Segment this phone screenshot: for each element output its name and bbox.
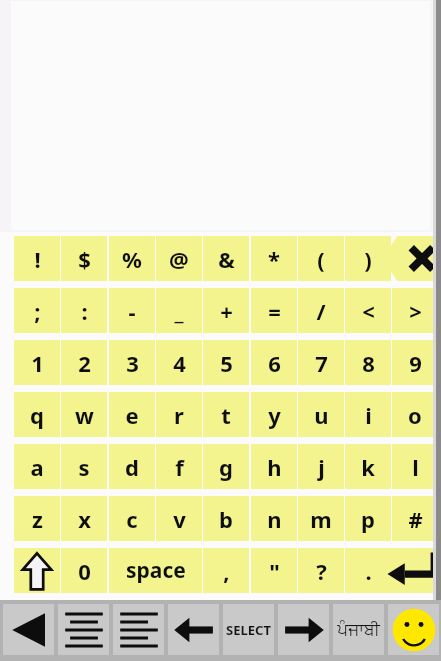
button[interactable]: j <box>298 444 344 489</box>
staticText: 1 <box>31 348 44 378</box>
button[interactable]: 6 <box>251 340 297 385</box>
staticText: 7 <box>315 348 328 378</box>
button[interactable]: l <box>392 444 438 489</box>
staticText: " <box>269 556 280 586</box>
staticText: ? <box>316 556 327 586</box>
button[interactable]: @ <box>156 236 202 281</box>
button[interactable]: 3 <box>109 340 155 385</box>
button[interactable]: p <box>345 496 391 541</box>
button[interactable]: > <box>392 288 438 333</box>
staticText: 2 <box>78 348 91 378</box>
staticText: a <box>30 452 44 482</box>
staticText: e <box>125 400 139 430</box>
button[interactable]: 1 <box>14 340 60 385</box>
staticText: z <box>32 504 43 534</box>
button[interactable]: % <box>109 236 155 281</box>
button[interactable]: g <box>203 444 249 489</box>
staticText: r <box>174 400 184 430</box>
button[interactable]: 7 <box>298 340 344 385</box>
staticText: 4 <box>173 348 186 378</box>
button[interactable]: Shift <box>14 548 60 593</box>
staticText: c <box>126 504 138 534</box>
staticText: ! <box>34 244 41 274</box>
staticText: & <box>218 244 235 274</box>
staticText: % <box>122 244 142 274</box>
button[interactable]: b <box>203 496 249 541</box>
button[interactable]: 0 <box>61 548 107 593</box>
button[interactable]: ? <box>298 548 344 593</box>
button[interactable]: t <box>203 392 249 437</box>
button[interactable]: Align center <box>58 604 109 655</box>
button[interactable]: k <box>345 444 391 489</box>
button[interactable]: Move right <box>278 604 329 655</box>
button[interactable]: i <box>345 392 391 437</box>
button[interactable]: f <box>156 444 202 489</box>
button[interactable]: - <box>109 288 155 333</box>
button[interactable]: d <box>109 444 155 489</box>
staticText: space <box>126 556 186 585</box>
staticText: ; <box>34 296 41 326</box>
button[interactable]: Emoji <box>388 604 439 655</box>
button[interactable]: Previous <box>3 604 54 655</box>
button[interactable]: SELECT <box>223 604 274 655</box>
button[interactable]: , <box>203 548 249 593</box>
button[interactable]: s <box>61 444 107 489</box>
button[interactable]: c <box>109 496 155 541</box>
button[interactable]: * <box>251 236 297 281</box>
button[interactable]: r <box>156 392 202 437</box>
button[interactable]: & <box>203 236 249 281</box>
button[interactable]: 2 <box>61 340 107 385</box>
button[interactable]: e <box>109 392 155 437</box>
staticText: o <box>408 400 422 430</box>
staticText: 6 <box>268 348 281 378</box>
button[interactable]: Align left <box>113 604 164 655</box>
button[interactable]: = <box>251 288 297 333</box>
staticText: k <box>361 452 375 482</box>
staticText: = <box>268 296 281 326</box>
button[interactable]: Move left <box>168 604 219 655</box>
staticText: 8 <box>362 348 375 378</box>
button[interactable]: q <box>14 392 60 437</box>
staticText: x <box>78 504 91 534</box>
button[interactable]: $ <box>61 236 107 281</box>
button[interactable]: / <box>298 288 344 333</box>
staticText: p <box>361 504 375 534</box>
button[interactable]: z <box>14 496 60 541</box>
button[interactable]: # <box>392 496 438 541</box>
button[interactable]: v <box>156 496 202 541</box>
button[interactable]: 5 <box>203 340 249 385</box>
button[interactable]: Backspace <box>383 236 441 281</box>
button[interactable]: + <box>203 288 249 333</box>
button[interactable]: < <box>345 288 391 333</box>
button[interactable]: 9 <box>392 340 438 385</box>
button[interactable]: h <box>251 444 297 489</box>
button[interactable]: u <box>298 392 344 437</box>
button[interactable]: m <box>298 496 344 541</box>
button[interactable]: ਪੰਜਾਬੀ <box>333 604 384 655</box>
button[interactable]: _ <box>156 288 202 333</box>
button[interactable]: ( <box>298 236 344 281</box>
button[interactable]: space <box>109 548 202 593</box>
button[interactable]: n <box>251 496 297 541</box>
button[interactable]: y <box>251 392 297 437</box>
button[interactable]: ) <box>345 236 391 281</box>
button[interactable]: ! <box>14 236 60 281</box>
button[interactable]: : <box>61 288 107 333</box>
staticText: s <box>78 452 90 482</box>
button[interactable]: 8 <box>345 340 391 385</box>
staticText: q <box>30 400 44 430</box>
button[interactable]: Enter <box>383 548 441 593</box>
staticText: SELECT <box>226 621 271 639</box>
button[interactable]: " <box>251 548 297 593</box>
button[interactable]: w <box>61 392 107 437</box>
staticText: 0 <box>78 556 91 586</box>
button[interactable]: . <box>345 548 391 593</box>
button[interactable]: x <box>61 496 107 541</box>
button[interactable]: ; <box>14 288 60 333</box>
button[interactable]: a <box>14 444 60 489</box>
button[interactable]: 4 <box>156 340 202 385</box>
staticText: n <box>267 504 282 534</box>
staticText: < <box>362 296 375 326</box>
staticText: @ <box>169 244 189 274</box>
button[interactable]: o <box>392 392 438 437</box>
